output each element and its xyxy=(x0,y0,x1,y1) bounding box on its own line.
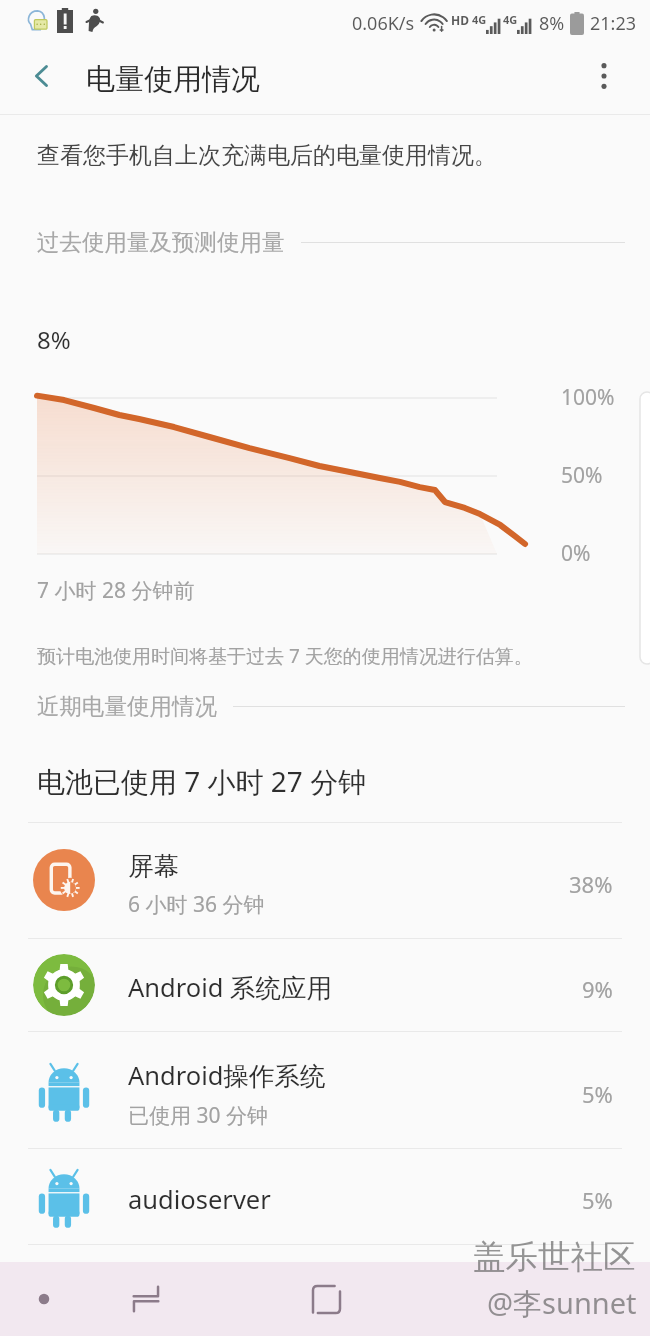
staticText: 50% xyxy=(561,461,603,490)
staticText: 7 小时 28 分钟前 xyxy=(37,576,195,605)
staticText: 4G xyxy=(472,12,487,27)
staticText: 盖乐世社区 xyxy=(473,1237,636,1278)
button[interactable]: Android 系统应用 xyxy=(0,938,650,1031)
staticText: 查看您手机自上次充满电后的电量使用情况。 xyxy=(37,141,497,170)
staticText: 9% xyxy=(582,974,613,1004)
button[interactable]: Show keyboard xyxy=(0,1262,88,1336)
staticText: 5% xyxy=(582,1185,613,1215)
button[interactable]: audioserver xyxy=(0,1148,650,1244)
staticText: 4G xyxy=(503,12,518,27)
staticText: 38% xyxy=(569,869,613,899)
staticText: 100% xyxy=(561,383,615,412)
staticText: 已使用 30 分钟 xyxy=(128,1101,268,1130)
staticText: 近期电量使用情况 xyxy=(37,692,217,720)
staticText: 5% xyxy=(582,1079,613,1109)
button[interactable]: Back xyxy=(14,48,70,104)
staticText: 8% xyxy=(37,323,71,356)
staticText: 电池已使用 7 小时 27 分钟 xyxy=(37,762,367,800)
button[interactable]: Home xyxy=(268,1262,384,1336)
button[interactable]: 屏幕 xyxy=(0,822,650,938)
button[interactable]: More options xyxy=(576,48,632,104)
staticText: HD xyxy=(451,12,469,28)
staticText: 8% xyxy=(539,11,565,36)
staticText: 0% xyxy=(561,539,591,568)
staticText: 预计电池使用时间将基于过去 7 天您的使用情况进行估算。 xyxy=(37,643,533,669)
staticText: Android 系统应用 xyxy=(128,970,333,1005)
staticText: 6 小时 36 分钟 xyxy=(128,890,265,919)
staticText: audioserver xyxy=(128,1182,271,1217)
staticText: Android操作系统 xyxy=(128,1058,326,1093)
button[interactable]: Recent apps xyxy=(88,1262,204,1336)
button[interactable]: Android操作系统 xyxy=(0,1031,650,1148)
staticText: 电量使用情况 xyxy=(86,61,260,98)
staticText: 过去使用量及预测使用量 xyxy=(37,228,285,256)
staticText: @李sunnet xyxy=(487,1283,637,1323)
staticText: 屏幕 xyxy=(128,850,179,882)
staticText: 0.06K/s xyxy=(352,11,415,36)
staticText: 21:23 xyxy=(590,11,637,36)
